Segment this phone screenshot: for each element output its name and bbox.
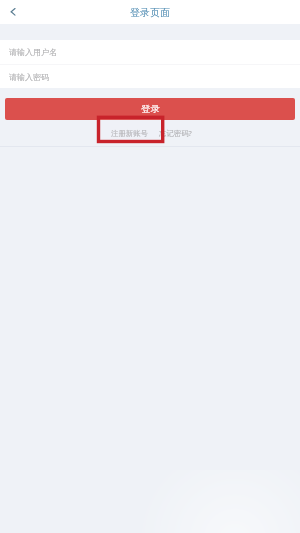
staticText: 登录页面 [130, 6, 170, 19]
staticText: 注册新账号 [111, 129, 148, 138]
button[interactable]: 忘记密码? [155, 120, 195, 146]
staticText: 请输入密码 [9, 72, 49, 82]
staticText: 请输入用户名 [9, 47, 57, 57]
button[interactable]: 注册新账号 [96, 120, 163, 146]
staticText: 忘记密码? [159, 128, 192, 138]
button[interactable]: 请输入密码 [0, 65, 300, 88]
staticText: 登录 [141, 103, 160, 115]
button[interactable]: 请输入用户名 [0, 40, 300, 64]
button[interactable]: 登录 [5, 98, 295, 120]
button[interactable]: Back [7, 5, 21, 19]
